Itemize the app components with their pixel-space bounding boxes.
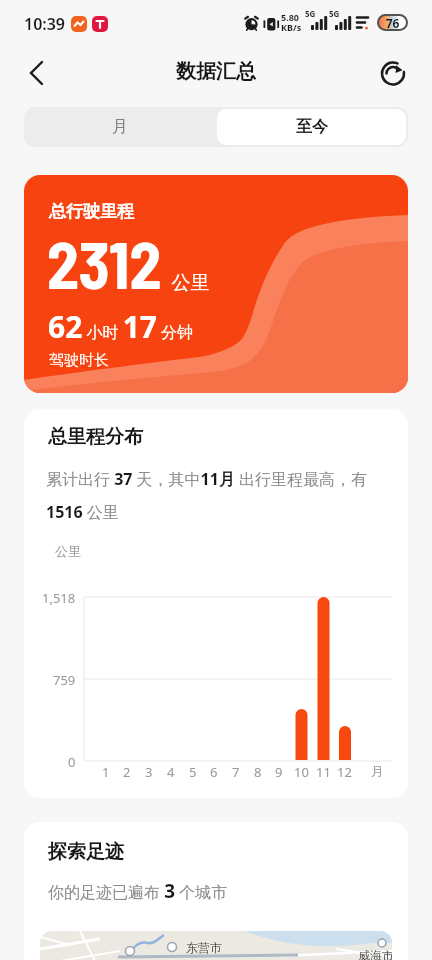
staticText: 东营市 <box>186 940 222 955</box>
staticText: 5G <box>305 8 316 19</box>
staticText: 4 <box>167 763 175 781</box>
staticText: 7 <box>232 763 240 781</box>
staticText: 11 <box>316 763 331 781</box>
staticText: 6 <box>210 763 218 781</box>
staticText: 10 <box>294 763 309 781</box>
staticText: 你的足迹已遍布 3 个城市 <box>48 878 228 904</box>
staticText: 62 小时 17 分钟 <box>48 306 194 347</box>
button[interactable]: 总行驶里程 <box>24 175 408 393</box>
staticText: KB/s <box>281 21 302 33</box>
staticText: 10:39 <box>24 13 66 35</box>
staticText: 累计出行 37 天，其中11月 出行里程最高，有 1516 公里 <box>46 468 368 523</box>
staticText: 2312 公里 <box>47 225 210 302</box>
staticText: 月 <box>371 763 384 779</box>
button[interactable] <box>376 56 410 90</box>
staticText: 3 <box>145 763 153 781</box>
staticText: 1 <box>102 763 110 781</box>
staticText: 探索足迹 <box>48 840 124 864</box>
staticText: 9 <box>275 763 283 781</box>
staticText: 驾驶时长 <box>49 351 109 370</box>
staticText: 8 <box>254 763 262 781</box>
staticText: 月 <box>112 117 128 137</box>
staticText: 1,518 <box>42 589 76 607</box>
staticText: 12 <box>337 763 352 781</box>
staticText: 5.80 <box>281 11 299 23</box>
staticText: 76 <box>377 15 408 31</box>
button[interactable] <box>16 56 50 90</box>
staticText: 至今 <box>296 117 328 137</box>
button[interactable]: 东营市 <box>40 931 392 960</box>
staticText: 总里程分布 <box>48 425 143 449</box>
staticText: 5G <box>329 8 340 19</box>
staticText: 759 <box>53 671 76 689</box>
staticText: 总行驶里程 <box>49 201 134 222</box>
button[interactable]: 月 <box>24 107 216 147</box>
staticText: 公里 <box>55 543 81 559</box>
staticText: 数据汇总 <box>176 59 256 84</box>
staticText: 5 <box>189 763 197 781</box>
staticText: 2 <box>123 763 131 781</box>
button[interactable]: 至今 <box>216 107 408 147</box>
staticText: 0 <box>68 753 76 771</box>
staticText: 威海市 <box>358 948 392 960</box>
